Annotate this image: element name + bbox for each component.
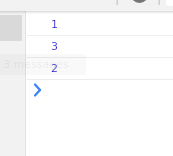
button[interactable] (0, 43, 22, 67)
staticText: 3 messages (3, 58, 69, 71)
staticText: Address... (0, 48, 12, 61)
button[interactable]: Expand (30, 83, 44, 97)
button[interactable]: 3 (27, 36, 173, 57)
staticText: 1 (51, 18, 58, 31)
button[interactable]: 1 (27, 14, 173, 35)
staticText: 2 (51, 62, 58, 75)
button[interactable]: 2 (27, 58, 173, 79)
staticText: 3 (51, 40, 58, 53)
